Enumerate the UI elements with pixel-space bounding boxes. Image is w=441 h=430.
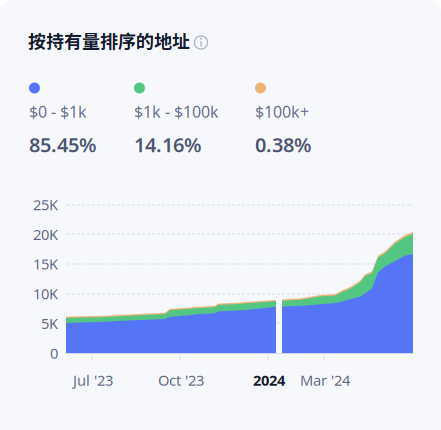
staticText: 10K [33, 284, 58, 303]
staticText: 按持有量排序的地址 [28, 27, 190, 53]
staticText: 0 [50, 343, 58, 363]
staticText: Oct '23 [158, 370, 204, 390]
staticText: 25K [33, 195, 58, 214]
staticText: 15K [33, 254, 58, 274]
staticText: 85.45% [29, 131, 97, 158]
staticText: $100k+ [255, 101, 309, 122]
staticText: Mar '24 [300, 370, 350, 390]
staticText: 0.38% [255, 131, 312, 158]
staticText: $1k - $100k [134, 101, 219, 122]
button[interactable]: About this chart [190, 31, 212, 53]
staticText: Jul '23 [73, 370, 113, 390]
staticText: 14.16% [134, 131, 202, 158]
staticText: 5K [41, 314, 58, 333]
staticText: $0 - $1k [29, 101, 87, 122]
staticText: 2024 [253, 370, 285, 390]
staticText: 20K [33, 224, 58, 244]
